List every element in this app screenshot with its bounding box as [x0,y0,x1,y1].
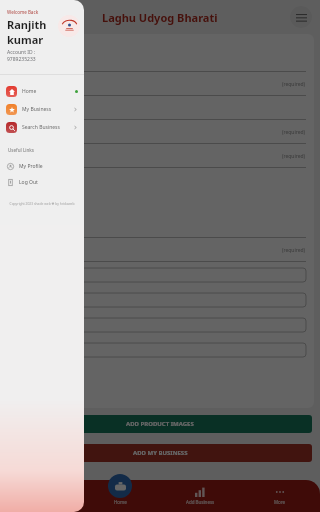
button[interactable]: Search Business [6,118,78,136]
staticText: Useful Links [8,147,35,153]
staticText: Search Business [22,124,73,131]
staticText: (required) [282,81,306,88]
staticText: My Profile [19,163,43,170]
staticText: ADD PRODUCT IMAGES [126,420,194,428]
staticText: Add Business [186,499,215,505]
staticText: Home [22,88,75,95]
staticText: My Business [22,106,73,113]
staticText: Account ID : [7,49,36,56]
staticText: ADD MY BUSINESS [133,449,188,457]
button[interactable]: My Business [0,480,80,512]
staticText: More [274,499,286,505]
button[interactable]: Add Business [160,480,240,512]
button[interactable]: Open navigation menu [290,6,312,28]
button[interactable]: ADD MY BUSINESS [8,444,312,462]
staticText: Copyright 2023 shade web ♥ by hridaweb [5,201,79,205]
button[interactable]: Home [6,82,78,100]
button[interactable]: Home [80,480,160,512]
staticText: Ranjith [7,17,47,32]
button[interactable]: ADD PRODUCT IMAGES [8,415,312,433]
button[interactable]: My Business [6,100,78,118]
staticText: kumar [7,32,44,47]
staticText: Laghu Udyog Bharati [102,10,218,25]
staticText: (required) [282,129,306,136]
button[interactable]: My Profile [7,158,77,174]
staticText: Welcome Back [7,9,39,15]
button[interactable]: More [240,480,320,512]
button[interactable]: Log Out [7,174,77,190]
staticText: (required) [282,247,306,254]
button[interactable]: Home [108,474,132,498]
staticText: Log Out [19,179,38,186]
staticText: (required) [282,153,306,160]
staticText: Home [114,499,127,505]
staticText: 9789235233 [7,56,36,63]
